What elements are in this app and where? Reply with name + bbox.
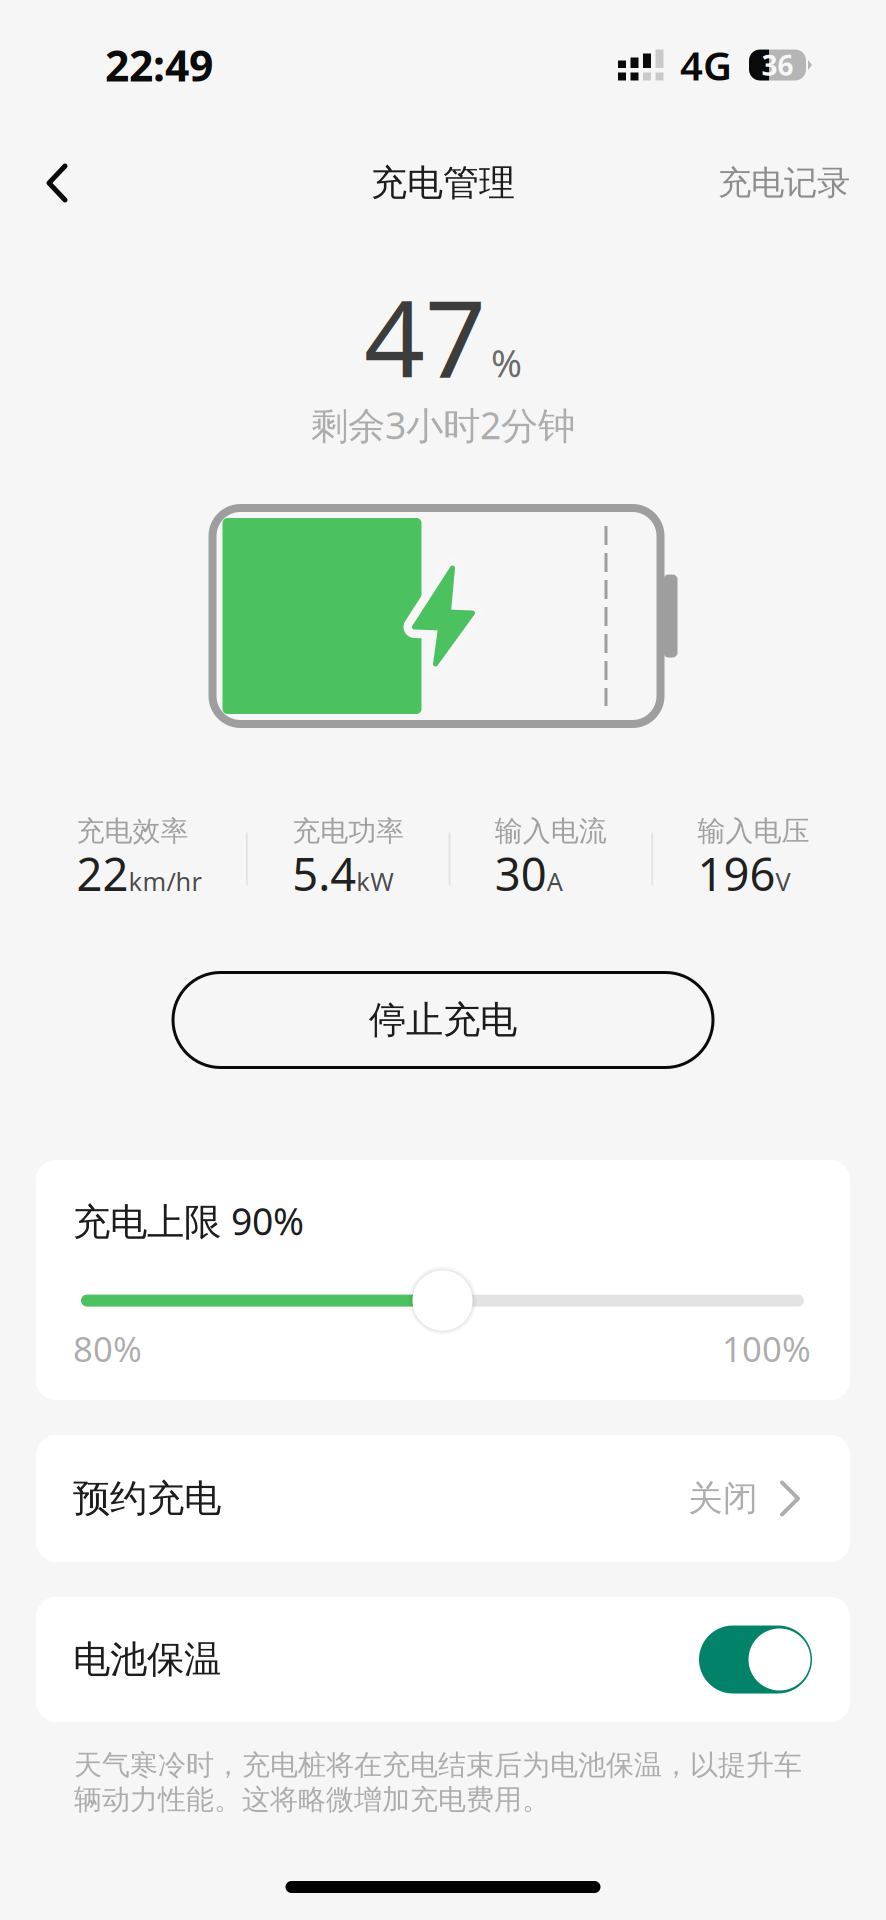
staticText: 停止充电 (369, 997, 517, 1043)
staticText: 80% (73, 1326, 142, 1372)
button[interactable]: 停止充电 (171, 971, 714, 1069)
staticText: 4G (680, 38, 732, 91)
staticText: 22:49 (105, 37, 213, 93)
staticText: 电池保温 (73, 1637, 221, 1682)
staticText: 47 (364, 265, 486, 407)
staticText: 充电功率 (292, 814, 404, 848)
staticText: V (775, 864, 790, 898)
button[interactable]: 预约充电 (36, 1435, 850, 1562)
button[interactable]: 充电记录 (718, 152, 850, 214)
staticText: kW (356, 864, 394, 898)
staticText: 22 (76, 843, 128, 904)
staticText: 充电上限 90% (73, 1196, 304, 1246)
staticText: 预约充电 (73, 1476, 221, 1521)
staticText: 30 (495, 843, 547, 904)
staticText: 5.4 (292, 843, 356, 904)
staticText: A (547, 864, 563, 898)
staticText: 输入电流 (495, 814, 607, 848)
staticText: 关闭 (688, 1477, 758, 1520)
staticText: 196 (697, 843, 775, 904)
staticText: 充电记录 (718, 162, 850, 203)
button[interactable]: 电池保温开关 (699, 1625, 812, 1693)
button[interactable]: 充电上限滑块 (81, 1267, 804, 1335)
staticText: 36 (761, 46, 793, 84)
staticText: km/hr (128, 864, 201, 898)
staticText: 充电效率 (76, 814, 188, 848)
staticText: 100% (722, 1326, 811, 1372)
staticText: 输入电压 (697, 814, 809, 848)
staticText: % (491, 338, 522, 387)
button[interactable]: 返回 (26, 152, 88, 214)
staticText: 充电管理 (371, 161, 515, 205)
staticText: 天气寒冷时，充电桩将在充电结束后为电池保温，以提升车辆动力性能。这将略微增加充电… (74, 1748, 802, 1817)
staticText: 剩余3小时2分钟 (311, 400, 575, 450)
